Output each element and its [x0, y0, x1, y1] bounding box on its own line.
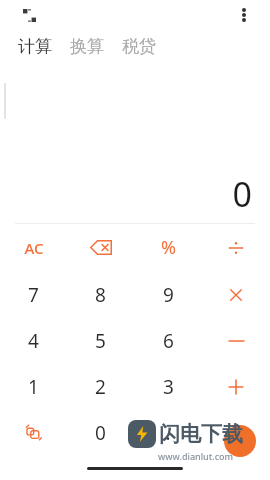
button[interactable]: 换算 [68, 32, 106, 61]
staticText: . [165, 420, 171, 446]
button[interactable]: Divide [202, 224, 270, 271]
button[interactable]: 税贷 [120, 32, 158, 61]
button[interactable]: 计算 [16, 32, 54, 61]
button[interactable]: 8 [67, 271, 134, 318]
button[interactable]: 1 [0, 364, 67, 410]
staticText: 5 [95, 328, 106, 354]
button[interactable]: 5 [67, 318, 134, 364]
staticText: 2 [95, 374, 106, 400]
button[interactable]: Minus [202, 318, 270, 364]
button[interactable]: More options [230, 1, 258, 29]
button[interactable]: Backspace [67, 224, 134, 271]
staticText: 计算 [18, 36, 52, 57]
staticText: AC [24, 238, 44, 258]
staticText: 0 [95, 420, 106, 446]
button[interactable]: 2 [67, 364, 134, 410]
button[interactable]: 6 [134, 318, 202, 364]
staticText: 闪电下载 [159, 421, 243, 447]
staticText: 8 [95, 282, 106, 308]
staticText: 换算 [70, 36, 104, 57]
button[interactable]: 0 [67, 410, 134, 456]
staticText: 3 [163, 374, 174, 400]
staticText: 税贷 [122, 36, 156, 57]
staticText: www.dianlut.com [158, 450, 234, 462]
staticText: 7 [28, 282, 39, 308]
button[interactable]: Scientific mode [0, 410, 67, 456]
staticText: 9 [163, 282, 174, 308]
staticText: 0 [232, 171, 252, 217]
button[interactable]: 9 [134, 271, 202, 318]
button[interactable]: Plus [202, 364, 270, 410]
button[interactable]: Multiply [202, 271, 270, 318]
button[interactable]: AC [0, 224, 67, 271]
button[interactable]: 3 [134, 364, 202, 410]
staticText: % [161, 235, 176, 260]
button[interactable]: 7 [0, 271, 67, 318]
staticText: 4 [28, 328, 39, 354]
button[interactable]: Resize window [16, 2, 42, 28]
staticText: 1 [28, 374, 39, 400]
button[interactable]: . [134, 410, 202, 456]
button[interactable]: 4 [0, 318, 67, 364]
button[interactable]: Equals [202, 410, 270, 456]
button[interactable]: % [134, 224, 202, 271]
staticText: 6 [163, 328, 174, 354]
